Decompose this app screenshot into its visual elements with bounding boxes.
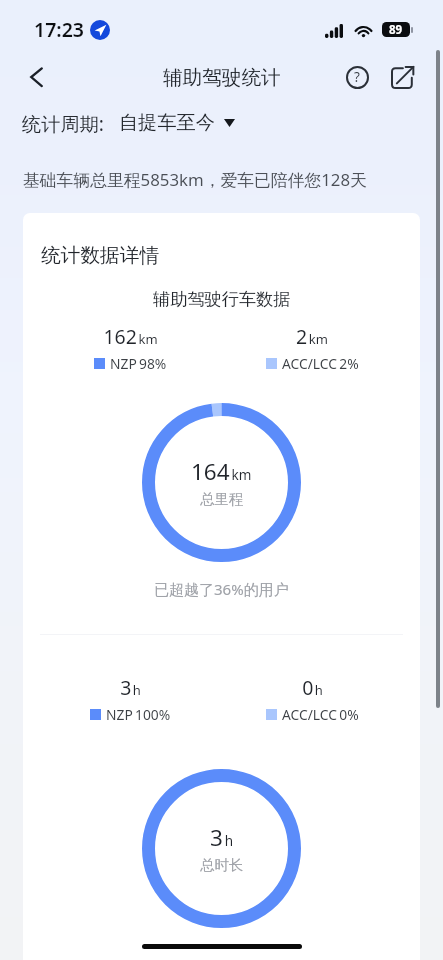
staticText: 自提车至今 (119, 111, 215, 135)
staticText: 17:23 (34, 16, 84, 43)
staticText: ACC/LCC 0% (282, 705, 359, 724)
staticText: 基础车辆总里程5853km，爱车已陪伴您128天 (23, 168, 367, 191)
staticText: 3 h (120, 674, 141, 701)
staticText: 89 (389, 22, 403, 37)
staticText: NZP 98% (110, 354, 167, 373)
button[interactable]: Help (338, 58, 376, 96)
staticText: 2 km (296, 323, 328, 350)
staticText: 164 km (191, 456, 252, 487)
staticText: 辅助驾驶行车数据 (153, 288, 291, 310)
staticText: 统计周期: (22, 110, 104, 136)
staticText: 0 h (302, 674, 323, 701)
staticText: 总里程 (200, 490, 244, 508)
staticText: 3 h (210, 822, 234, 853)
staticText: 统计数据详情 (41, 243, 160, 268)
staticText: 已超越了36%的用户 (154, 579, 289, 599)
button[interactable]: Share (384, 58, 422, 96)
staticText: NZP 100% (106, 705, 171, 724)
staticText: 总时长 (200, 856, 244, 874)
button[interactable]: Back (15, 55, 59, 99)
staticText: ? (354, 68, 360, 86)
staticText: 辅助驾驶统计 (163, 65, 281, 90)
button[interactable]: 自提车至今 (119, 111, 235, 135)
staticText: 162 km (103, 323, 158, 350)
staticText: ACC/LCC 2% (282, 354, 359, 373)
